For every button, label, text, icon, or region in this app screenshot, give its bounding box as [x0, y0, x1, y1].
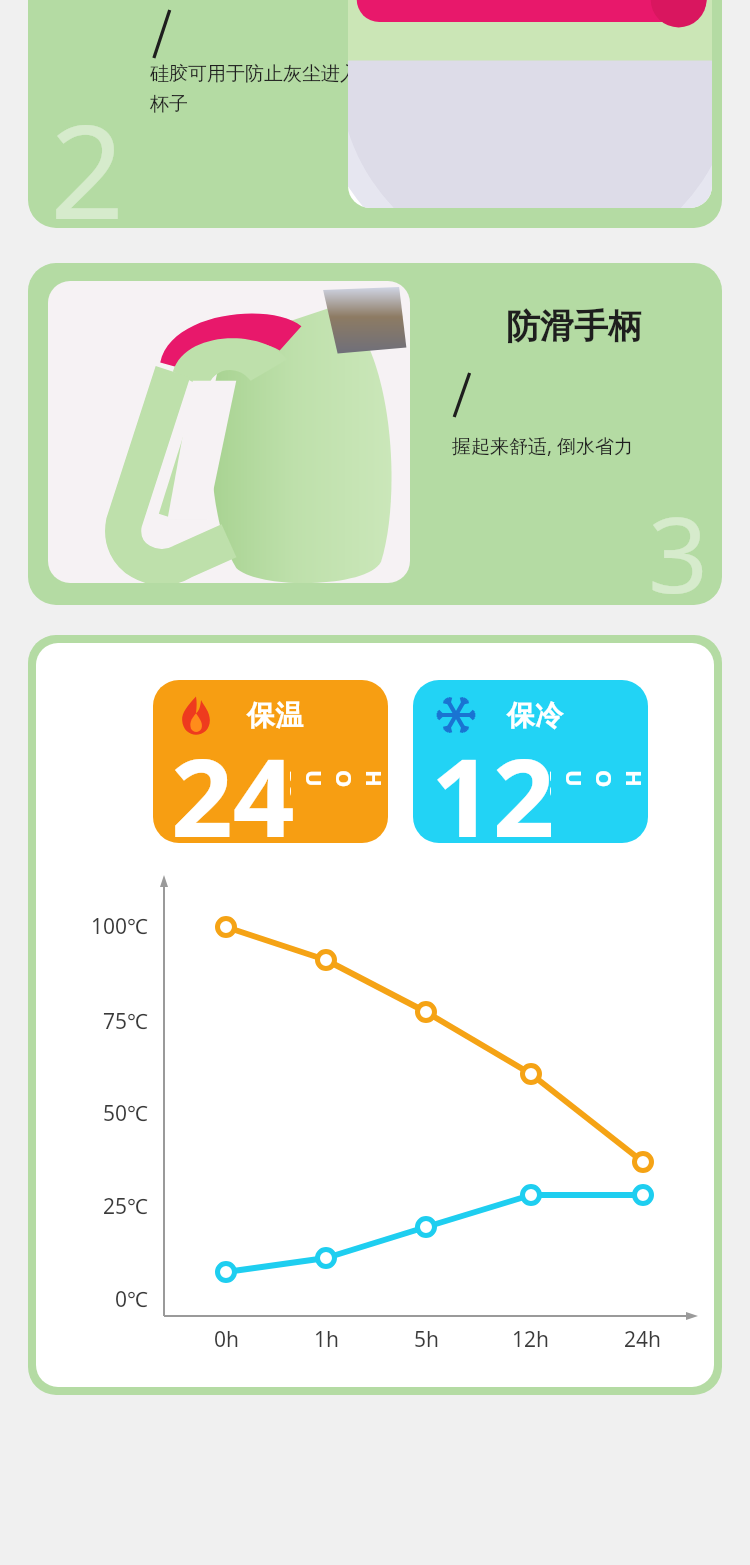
staticText: 25℃	[103, 1192, 148, 1221]
button[interactable]: 2	[28, 0, 722, 228]
staticText: 保温	[247, 698, 303, 733]
staticText: 0h	[214, 1325, 239, 1354]
staticText: 24h	[624, 1325, 662, 1354]
staticText: 24	[171, 722, 295, 843]
staticText: 握起来舒适, 倒水省力	[452, 433, 634, 459]
staticText: 12h	[512, 1325, 550, 1354]
staticText: 12	[431, 722, 555, 843]
staticText: 硅胶可用于防止灰尘进入杯子	[150, 62, 365, 116]
staticText: HOURS	[290, 770, 388, 798]
button[interactable]: Keeps hot	[28, 635, 722, 1395]
other: Keeps cold	[435, 694, 477, 736]
other: Keeps hot	[175, 694, 217, 736]
staticText: 3	[648, 481, 709, 605]
staticText: 5h	[414, 1325, 439, 1354]
button[interactable]: Keeps cold	[413, 680, 648, 843]
staticText: HOURS	[550, 770, 648, 798]
staticText: 75℃	[103, 1007, 148, 1036]
button[interactable]: 3	[28, 263, 722, 605]
staticText: 1h	[314, 1325, 339, 1354]
staticText: 保冷	[507, 698, 563, 733]
staticText: 防滑手柄	[506, 305, 642, 348]
staticText: 100℃	[91, 912, 148, 941]
staticText: 2	[50, 80, 125, 228]
button[interactable]: Keeps hot	[153, 680, 388, 843]
staticText: 0℃	[115, 1285, 148, 1314]
staticText: 50℃	[103, 1099, 148, 1128]
